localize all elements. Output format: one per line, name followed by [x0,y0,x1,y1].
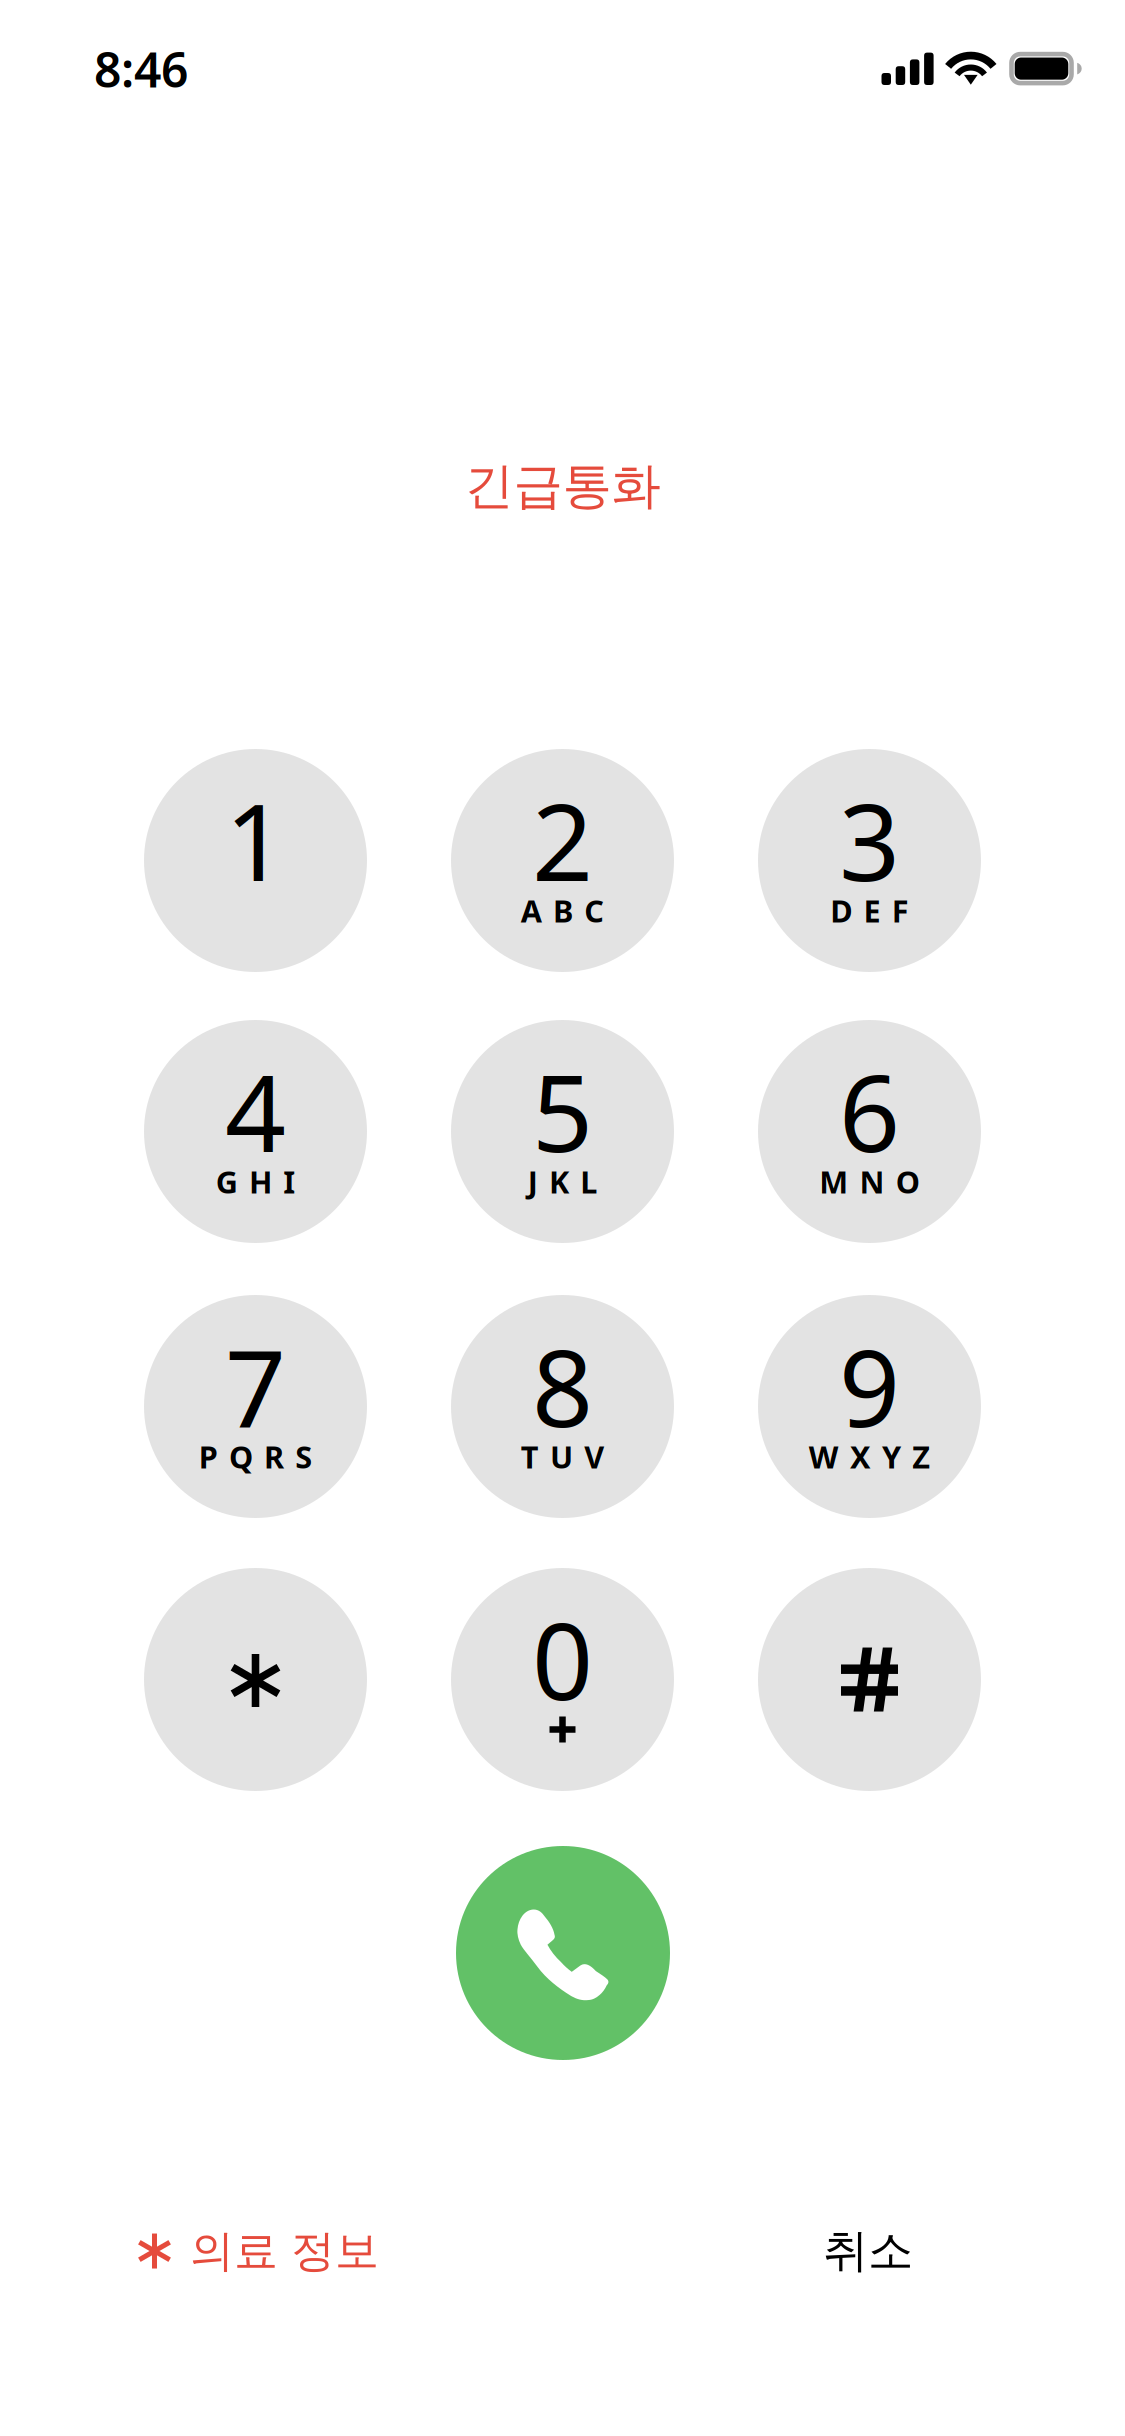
staticText: 8 [532,1315,593,1456]
staticText: 9 [839,1315,900,1456]
staticText: D E F [830,890,909,931]
button[interactable]: Call [456,1846,670,2060]
button[interactable]: 의료 정보 [137,2224,379,2278]
button[interactable]: 4 [144,1020,367,1243]
button[interactable]: 5 [451,1020,674,1243]
staticText: J K L [528,1161,597,1202]
staticText: 1 [225,769,286,910]
staticText: 0 [532,1588,593,1729]
staticText: 취소 [823,2223,913,2279]
staticText: G H I [216,1161,295,1202]
button[interactable]: 6 [758,1020,981,1243]
staticText: M N O [819,1161,920,1202]
button[interactable]: 8 [451,1295,674,1518]
staticText: W X Y Z [809,1436,930,1477]
button[interactable]: 1 [144,749,367,972]
button[interactable]: 9 [758,1295,981,1518]
staticText: 의료 정보 [190,2224,379,2278]
staticText: 6 [839,1040,900,1181]
staticText: 7 [225,1315,286,1456]
staticText: 8:46 [94,37,188,101]
staticText: A B C [521,890,604,931]
button[interactable]: Star [144,1568,367,1791]
button[interactable]: 2 [451,749,674,972]
button[interactable]: 7 [144,1295,367,1518]
button[interactable]: 0 [451,1568,674,1791]
button[interactable]: 취소 [823,2223,913,2279]
staticText: P Q R S [199,1436,312,1477]
staticText: 3 [839,769,900,910]
staticText: 2 [532,769,593,910]
staticText: 긴급통화 [464,456,660,516]
staticText: 5 [532,1040,593,1181]
staticText: 4 [225,1040,286,1181]
staticText: T U V [521,1436,604,1477]
button[interactable]: 3 [758,749,981,972]
button[interactable]: Pound [758,1568,981,1791]
